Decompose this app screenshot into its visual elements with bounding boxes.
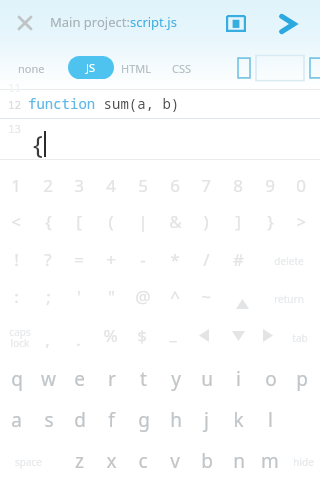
- button[interactable]: function sum(a, b): [28, 94, 180, 113]
- button[interactable]: ^: [160, 283, 190, 310]
- staticText: w: [41, 366, 56, 392]
- button[interactable]: y: [160, 364, 191, 393]
- button[interactable]: x: [96, 446, 127, 475]
- button[interactable]: u: [191, 364, 222, 393]
- button[interactable]: Left: [190, 324, 218, 346]
- button[interactable]: ;: [33, 283, 63, 310]
- button[interactable]: Right: [254, 324, 282, 346]
- button[interactable]: $: [127, 322, 157, 349]
- button[interactable]: r: [96, 364, 127, 393]
- button[interactable]: !: [1, 246, 31, 273]
- staticText: delete: [274, 254, 304, 268]
- button[interactable]: g: [128, 405, 159, 434]
- button[interactable]: =: [64, 246, 94, 273]
- button[interactable]: Main project:script.js: [50, 9, 177, 35]
- button[interactable]: @: [128, 283, 158, 310]
- button[interactable]: w: [33, 364, 64, 393]
- button[interactable]: ]: [223, 208, 253, 235]
- staticText: ": [108, 285, 115, 308]
- button[interactable]: a: [1, 405, 32, 434]
- button[interactable]: o: [255, 364, 286, 393]
- button[interactable]: e: [64, 364, 95, 393]
- button[interactable]: %: [95, 322, 125, 349]
- button[interactable]: k: [223, 405, 254, 434]
- staticText: q: [11, 366, 23, 392]
- button[interactable]: #: [223, 246, 253, 273]
- button[interactable]: }: [255, 208, 285, 235]
- staticText: 4: [106, 174, 116, 197]
- button[interactable]: m: [254, 446, 285, 475]
- button[interactable]: n: [223, 446, 254, 475]
- button[interactable]: 0: [286, 172, 316, 199]
- button[interactable]: t: [128, 364, 159, 393]
- button[interactable]: JS: [68, 56, 114, 79]
- button[interactable]: Split view: [236, 53, 312, 83]
- button[interactable]: 2: [33, 172, 63, 199]
- staticText: p: [296, 366, 308, 392]
- button[interactable]: {: [33, 208, 63, 235]
- button[interactable]: h: [160, 405, 191, 434]
- staticText: e: [74, 366, 85, 392]
- button[interactable]: c: [127, 446, 158, 475]
- button[interactable]: |: [128, 208, 158, 235]
- button[interactable]: hide: [287, 452, 319, 472]
- button[interactable]: (: [96, 208, 126, 235]
- button[interactable]: 5: [128, 172, 158, 199]
- button[interactable]: ": [96, 283, 126, 310]
- button[interactable]: 4: [96, 172, 126, 199]
- staticText: a: [11, 407, 22, 433]
- staticText: (: [108, 210, 114, 233]
- button[interactable]: q: [1, 364, 32, 393]
- button[interactable]: Layout: [220, 7, 252, 39]
- button[interactable]: s: [33, 405, 64, 434]
- button[interactable]: l: [255, 405, 286, 434]
- button[interactable]: d: [64, 405, 95, 434]
- button[interactable]: ): [191, 208, 221, 235]
- button[interactable]: f: [96, 405, 127, 434]
- staticText: function sum(a, b): [28, 94, 180, 113]
- button[interactable]: caps lock: [2, 322, 38, 352]
- staticText: [: [76, 210, 82, 233]
- button[interactable]: delete: [267, 251, 311, 271]
- button[interactable]: 6: [160, 172, 190, 199]
- staticText: _: [169, 322, 177, 345]
- button[interactable]: tab: [285, 328, 315, 348]
- button[interactable]: j: [191, 405, 222, 434]
- button[interactable]: p: [286, 364, 317, 393]
- button[interactable]: ?: [33, 246, 63, 273]
- button[interactable]: v: [159, 446, 190, 475]
- staticText: >: [296, 210, 306, 233]
- button[interactable]: b: [191, 446, 222, 475]
- button[interactable]: Up: [228, 294, 256, 314]
- button[interactable]: space: [4, 452, 52, 472]
- button[interactable]: >: [286, 208, 316, 235]
- button[interactable]: /: [191, 246, 221, 273]
- button[interactable]: none: [18, 58, 45, 78]
- button[interactable]: Run: [270, 7, 304, 41]
- button[interactable]: return: [267, 289, 311, 309]
- button[interactable]: Down: [224, 326, 252, 346]
- button[interactable]: 9: [255, 172, 285, 199]
- button[interactable]: *: [160, 246, 190, 273]
- button[interactable]: [: [64, 208, 94, 235]
- button[interactable]: HTML: [121, 58, 152, 78]
- button[interactable]: &: [160, 208, 190, 235]
- button[interactable]: ~: [191, 283, 221, 310]
- button[interactable]: CSS: [172, 58, 192, 78]
- button[interactable]: 3: [64, 172, 94, 199]
- button[interactable]: 7: [191, 172, 221, 199]
- button[interactable]: 1: [1, 172, 31, 199]
- button[interactable]: z: [64, 446, 95, 475]
- button[interactable]: i: [223, 364, 254, 393]
- button[interactable]: <: [1, 208, 31, 235]
- button[interactable]: 8: [223, 172, 253, 199]
- button[interactable]: Close: [10, 8, 40, 38]
- staticText: }: [267, 210, 274, 233]
- button[interactable]: +: [96, 246, 126, 273]
